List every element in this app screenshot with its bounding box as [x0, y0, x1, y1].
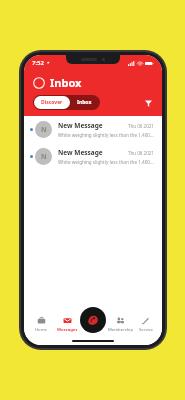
button[interactable]: Home	[28, 315, 54, 334]
staticText: Inbox	[77, 99, 92, 106]
button[interactable]: Membership	[108, 315, 133, 334]
button[interactable]: Filter	[143, 98, 153, 108]
button[interactable]: Profile	[33, 77, 45, 89]
staticText: N	[41, 125, 47, 135]
staticText: Thu 06 2021	[128, 123, 154, 129]
button[interactable]: Inbox	[70, 96, 99, 109]
staticText: Messages	[57, 327, 78, 333]
staticText: Home	[35, 327, 47, 333]
staticText: New Message	[58, 148, 103, 157]
staticText: Service	[139, 327, 153, 333]
staticText: N	[41, 152, 47, 162]
staticText: New Message	[58, 121, 103, 130]
staticText: White weighing slightly less than the 1,…	[58, 159, 154, 165]
button[interactable]: Messages	[54, 315, 80, 334]
staticText: Inbox	[50, 75, 82, 90]
button[interactable]: N	[24, 116, 162, 143]
button[interactable]: Compose	[80, 307, 106, 333]
staticText: Membership	[108, 327, 133, 333]
button[interactable]: Service	[133, 315, 158, 334]
button[interactable]: Discover	[34, 96, 70, 109]
staticText: Discover	[41, 99, 63, 106]
button[interactable]: Discover	[33, 95, 100, 110]
staticText: Thu 06 2021	[128, 150, 154, 156]
staticText: 7:52	[32, 59, 44, 67]
staticText: White weighing slightly less than the 1,…	[58, 132, 154, 138]
button[interactable]: N	[24, 143, 162, 170]
